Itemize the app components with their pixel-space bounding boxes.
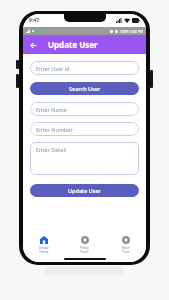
staticText: More Point <box>122 246 130 254</box>
staticText: Enter Number <box>36 126 73 133</box>
staticText: 100% 5:02 PM <box>120 29 143 34</box>
staticText: Enter Name <box>36 106 67 113</box>
button[interactable]: Enter Name <box>30 102 139 116</box>
staticText: Enter Detail <box>36 146 67 153</box>
button[interactable]: Policy Point <box>64 235 105 255</box>
button[interactable]: Back <box>27 39 39 51</box>
staticText: Policy Point <box>80 246 89 254</box>
staticText: Update User <box>48 39 98 50</box>
button[interactable]: Device Home <box>23 235 64 255</box>
staticText: Enter User id <box>36 65 70 72</box>
button[interactable]: Search User <box>30 82 139 95</box>
staticText: Search User <box>69 85 101 92</box>
staticText: 9:47 <box>29 17 39 24</box>
button[interactable]: Update User <box>30 184 139 197</box>
button[interactable]: Enter User id <box>30 61 139 75</box>
staticText: Device Home <box>39 246 49 254</box>
button[interactable]: More Point <box>105 235 146 255</box>
staticText: Update User <box>68 187 101 194</box>
button[interactable]: Enter Number <box>30 122 139 136</box>
button[interactable]: Enter Detail <box>30 142 139 175</box>
